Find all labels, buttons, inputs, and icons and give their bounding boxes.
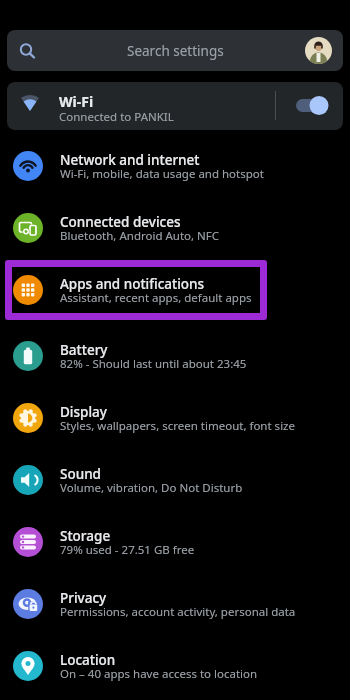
- button[interactable]: Sound: [0, 451, 350, 509]
- staticText: Apps and notifications: [60, 275, 205, 293]
- staticText: Assistant, recent apps, default apps: [60, 290, 252, 306]
- staticText: Privacy: [60, 589, 107, 607]
- staticText: Network and internet: [60, 151, 200, 169]
- staticText: Location: [60, 651, 116, 669]
- staticText: Display: [60, 403, 107, 421]
- staticText: Wi-Fi: [59, 92, 94, 111]
- staticText: Connected to PANKIL: [59, 109, 174, 125]
- button[interactable]: Location: [0, 637, 350, 695]
- staticText: Search settings: [127, 42, 224, 60]
- button[interactable]: Connected devices: [0, 199, 350, 257]
- staticText: 79% used - 27.51 GB free: [60, 542, 195, 558]
- staticText: 82% - Should last until about 23:45: [60, 356, 247, 372]
- staticText: Volume, vibration, Do Not Disturb: [60, 480, 243, 496]
- button[interactable]: [289, 95, 331, 115]
- button[interactable]: Storage: [0, 513, 350, 571]
- button[interactable]: Battery: [0, 327, 350, 385]
- button[interactable]: [305, 37, 332, 64]
- staticText: Connected devices: [60, 213, 181, 231]
- staticText: Wi-Fi, mobile, data usage and hotspot: [60, 166, 264, 182]
- staticText: On – 40 apps have access to location: [60, 666, 258, 682]
- staticText: Styles, wallpapers, screen timeout, font…: [60, 418, 295, 434]
- button[interactable]: Network and internet: [0, 137, 350, 195]
- staticText: Bluetooth, Android Auto, NFC: [60, 228, 220, 244]
- button[interactable]: Display: [0, 389, 350, 447]
- button[interactable]: Search settings: [7, 30, 343, 71]
- staticText: Permissions, account activity, personal …: [60, 604, 296, 620]
- staticText: Sound: [60, 465, 101, 483]
- staticText: Storage: [60, 527, 111, 545]
- button[interactable]: Privacy: [0, 575, 350, 633]
- button[interactable]: Apps and notifications: [0, 261, 350, 319]
- staticText: Battery: [60, 341, 108, 359]
- button[interactable]: Wi-Fi: [7, 82, 343, 130]
